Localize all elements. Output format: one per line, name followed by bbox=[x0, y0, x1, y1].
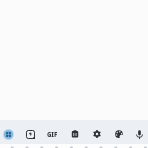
button[interactable]: Stickers bbox=[20, 122, 41, 146]
button[interactable]: Themes bbox=[108, 122, 129, 146]
button[interactable]: GIF bbox=[42, 123, 63, 147]
button[interactable]: Voice input bbox=[129, 122, 148, 146]
button[interactable]: Google assistant bbox=[0, 122, 19, 146]
button[interactable]: Settings bbox=[86, 122, 107, 146]
button[interactable]: Clipboard bbox=[64, 122, 85, 146]
staticText: GIF bbox=[47, 131, 58, 139]
